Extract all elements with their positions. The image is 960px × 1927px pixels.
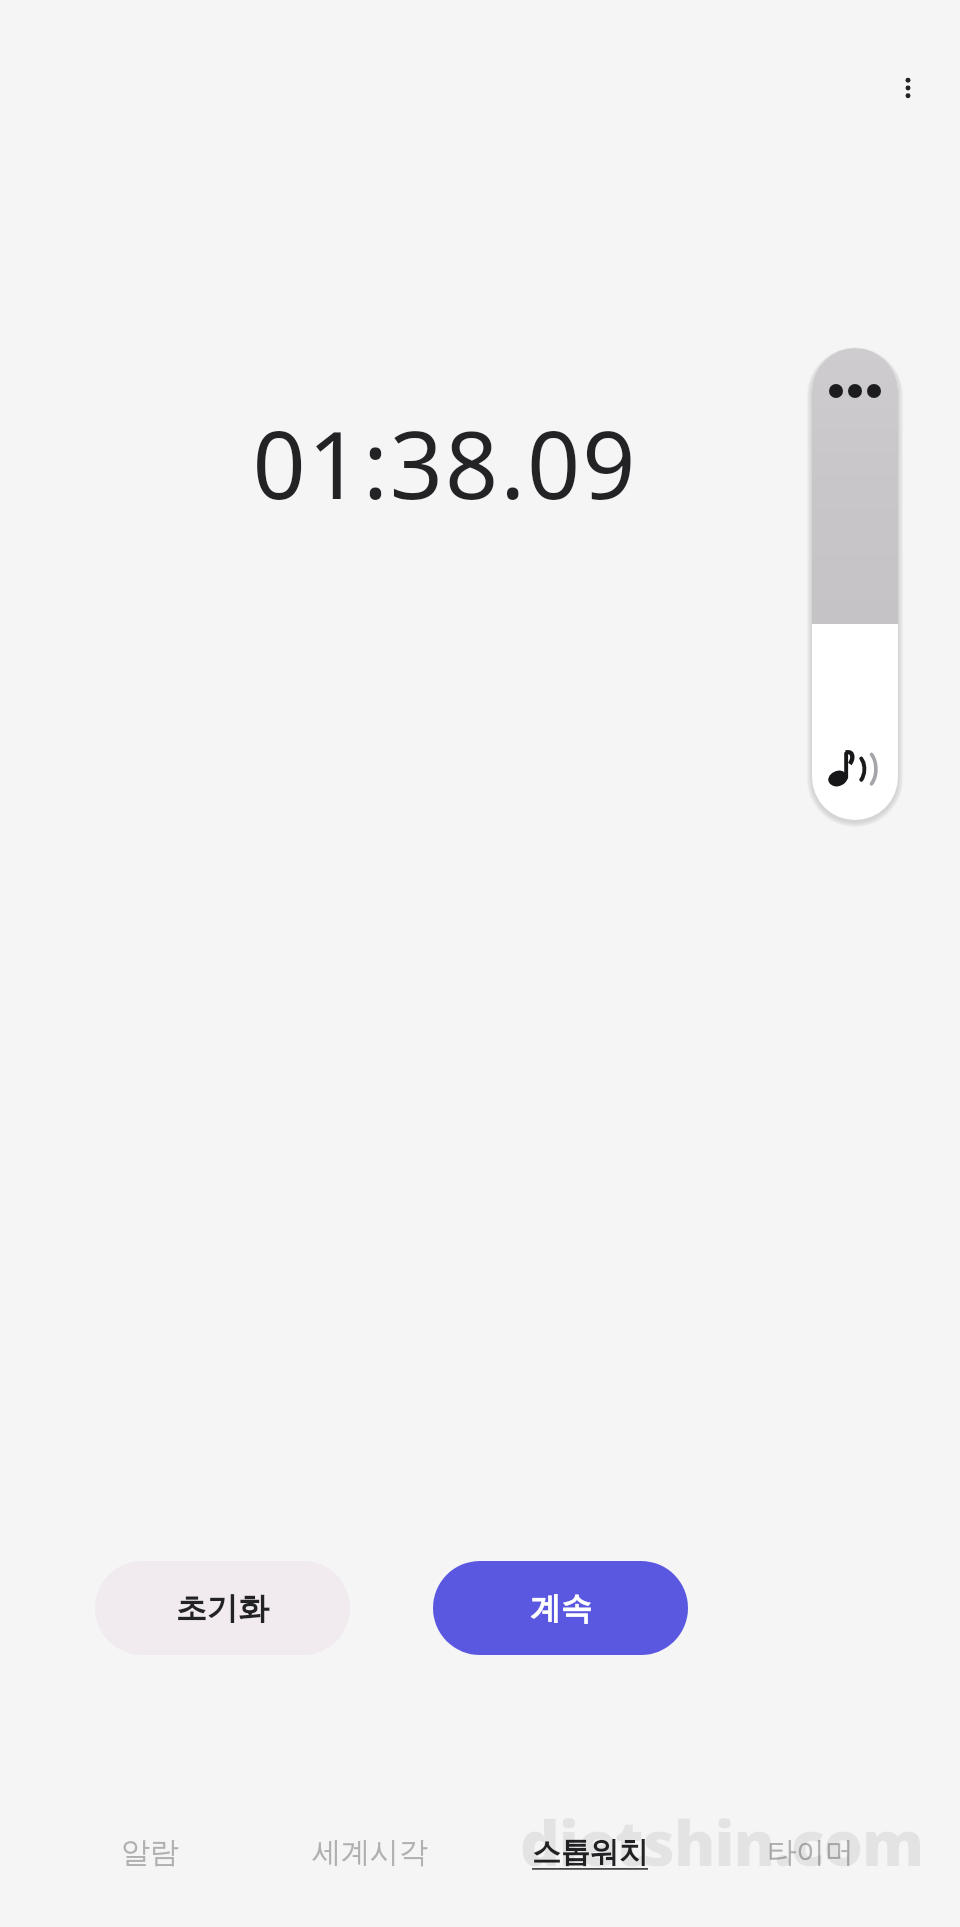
button[interactable]: More options [880,60,936,116]
button[interactable]: 알람 [40,1826,260,1879]
staticText: dietshin.com [520,1800,923,1884]
staticText: 알람 [121,1834,179,1871]
button[interactable]: 세계시각 [260,1826,480,1879]
button[interactable]: 타이머 [700,1826,920,1879]
button[interactable]: 스톱워치 [480,1826,700,1879]
button[interactable]: 초기화 [95,1561,350,1655]
staticText: 계속 [530,1589,592,1628]
staticText: 세계시각 [312,1834,428,1871]
staticText: 스톱워치 [532,1834,648,1871]
staticText: 타이머 [767,1834,854,1871]
button[interactable]: Volume slider [812,348,898,820]
staticText: 초기화 [176,1589,269,1628]
button[interactable]: 계속 [433,1561,688,1655]
staticText: 01:38.09 [252,400,638,527]
